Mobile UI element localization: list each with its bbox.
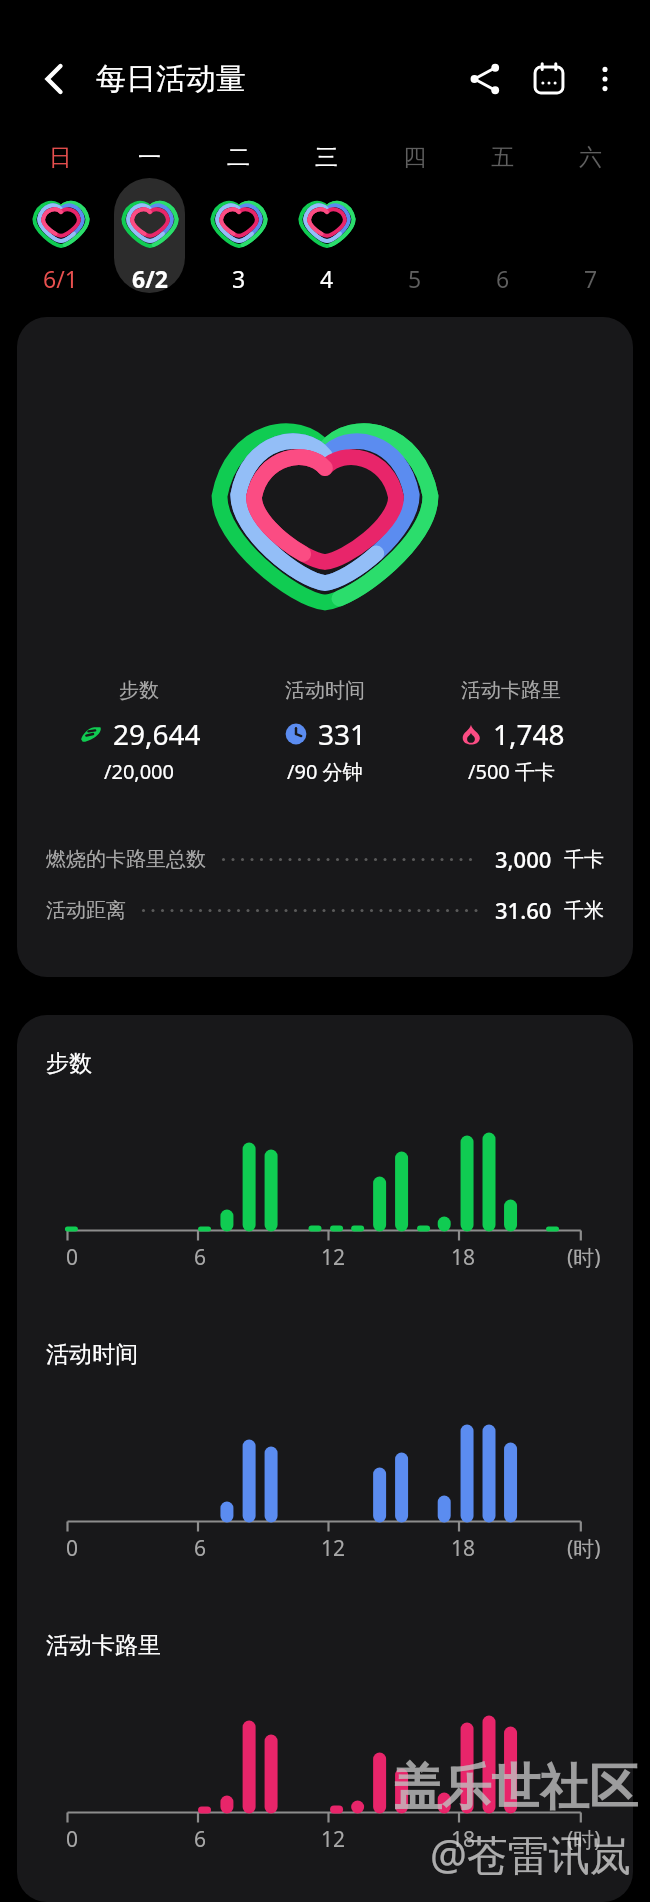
staticText: 12: [321, 1243, 346, 1272]
staticText: 12: [321, 1534, 346, 1563]
staticText: 6/2: [132, 263, 168, 293]
staticText: 5: [408, 263, 422, 293]
staticText: 活动卡路里: [461, 678, 561, 703]
staticText: /20,000: [104, 758, 174, 785]
staticText: 四: [403, 143, 426, 172]
staticText: 1,748: [493, 715, 565, 753]
staticText: 五: [491, 143, 514, 172]
button[interactable]: 二: [194, 130, 282, 245]
button[interactable]: 一: [105, 130, 194, 245]
staticText: (时): [567, 1243, 601, 1272]
staticText: 步数: [119, 678, 159, 703]
staticText: 盖乐世社区: [393, 1757, 638, 1819]
staticText: 12: [321, 1825, 346, 1854]
staticText: 0: [66, 1534, 79, 1563]
staticText: 日: [49, 143, 72, 172]
button[interactable]: 四: [370, 130, 458, 245]
staticText: 燃烧的卡路里总数: [46, 847, 206, 872]
staticText: 每日活动量: [96, 60, 246, 98]
staticText: 18: [451, 1243, 476, 1272]
staticText: 6/1: [43, 263, 78, 293]
staticText: @苍雷讯岚: [430, 1826, 631, 1882]
staticText: /500 千卡: [468, 758, 555, 785]
button[interactable]: 日: [16, 130, 105, 245]
staticText: 6: [496, 263, 510, 293]
button[interactable]: More options: [580, 54, 630, 104]
staticText: 6: [194, 1243, 207, 1272]
button[interactable]: Share: [456, 50, 514, 108]
staticText: 千卡: [564, 847, 604, 872]
staticText: 7: [584, 263, 598, 293]
staticText: 活动时间: [46, 1340, 138, 1369]
staticText: 29,644: [113, 715, 201, 753]
button[interactable]: Back: [26, 51, 82, 107]
button[interactable]: 燃烧的卡路里总数: [46, 842, 604, 876]
staticText: 活动距离: [46, 898, 126, 923]
staticText: 3: [232, 263, 246, 293]
staticText: 二: [227, 143, 250, 172]
staticText: 4: [320, 263, 334, 293]
staticText: 6: [194, 1534, 207, 1563]
staticText: 6: [194, 1825, 207, 1854]
staticText: 步数: [46, 1049, 92, 1078]
staticText: /90 分钟: [287, 758, 363, 785]
button[interactable]: Calendar: [520, 50, 578, 108]
staticText: 活动时间: [285, 678, 365, 703]
staticText: 六: [579, 143, 602, 172]
button[interactable]: 三: [282, 130, 370, 245]
staticText: 活动卡路里: [46, 1631, 161, 1660]
staticText: 18: [451, 1534, 476, 1563]
button[interactable]: 活动距离: [46, 893, 604, 927]
staticText: (时): [567, 1825, 601, 1854]
button[interactable]: 五: [458, 130, 546, 245]
staticText: 3,000: [495, 844, 552, 874]
staticText: 331: [318, 715, 367, 753]
staticText: (时): [567, 1534, 601, 1563]
staticText: 0: [66, 1825, 79, 1854]
button[interactable]: 步数: [17, 317, 633, 977]
staticText: 31.60: [495, 895, 552, 925]
staticText: 0: [66, 1243, 79, 1272]
button[interactable]: 六: [546, 130, 634, 245]
staticText: 三: [315, 143, 338, 172]
staticText: 一: [138, 143, 161, 172]
staticText: 千米: [564, 898, 604, 923]
staticText: 18: [451, 1825, 476, 1854]
